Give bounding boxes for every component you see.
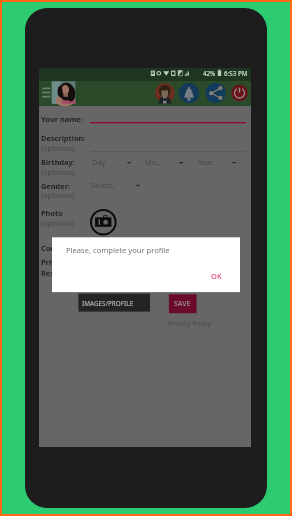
staticText: Year: [198, 157, 214, 167]
button[interactable]: Profile photo: [52, 81, 76, 105]
staticText: Gender:: [41, 181, 71, 191]
button[interactable]: Add photo: [90, 209, 116, 235]
button[interactable]: Select year: [196, 154, 236, 168]
staticText: Privacy:: [41, 257, 70, 267]
staticText: Description:: [41, 133, 86, 143]
staticText: Birthday:: [41, 157, 75, 167]
staticText: Please, complete your profile: [66, 245, 170, 255]
staticText: OK: [211, 271, 222, 281]
staticText: Day: [92, 157, 106, 167]
button[interactable]: Account: [155, 83, 175, 103]
button[interactable]: Privacy Policy: [166, 318, 218, 330]
staticText: Select..: [91, 180, 116, 190]
staticText: SAVE: [174, 299, 191, 309]
staticText: Photo: [41, 208, 63, 218]
staticText: Mo..: [145, 157, 161, 167]
staticText: (optional): [41, 218, 75, 228]
staticText: (optional): [41, 143, 75, 153]
button[interactable]: Images / profile: [78, 292, 152, 311]
button[interactable]: Select day: [90, 154, 132, 168]
button[interactable]: Notifications: [179, 83, 200, 104]
button[interactable]: Menu: [42, 86, 50, 100]
button[interactable]: Log out: [231, 84, 249, 102]
button[interactable]: Save: [168, 294, 197, 313]
staticText: IMAGES/PROFILE: [82, 299, 134, 308]
button[interactable]: Select month: [144, 154, 184, 168]
button[interactable]: OK: [206, 269, 230, 284]
staticText: Restore: [41, 268, 70, 278]
staticText: (optional): [41, 190, 75, 200]
staticText: 42%: [203, 69, 216, 77]
staticText: Contact:: [41, 243, 72, 253]
button[interactable]: Share: [205, 83, 226, 104]
button[interactable]: Select gender: [90, 177, 142, 191]
staticText: (optional): [41, 167, 75, 177]
staticText: Your name:: [41, 114, 83, 124]
staticText: 6:53 PM: [224, 69, 248, 77]
staticText: Privacy Policy: [168, 319, 211, 328]
